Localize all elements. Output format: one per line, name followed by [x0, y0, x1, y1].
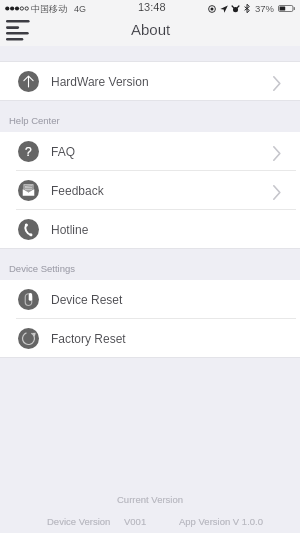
staticText: Hotline [51, 223, 89, 236]
staticText: Factory Reset [51, 332, 126, 345]
staticText: Current Version [117, 494, 184, 505]
staticText: V001 [124, 516, 147, 527]
staticText: Feedback [51, 184, 104, 197]
staticText: ? [25, 145, 32, 158]
staticText: HardWare Version [51, 75, 149, 88]
button[interactable]: Feedback [0, 171, 300, 209]
staticText: Device Reset [51, 293, 123, 306]
button[interactable]: Factory Reset [0, 319, 300, 357]
staticText: 中国移动 [31, 3, 67, 14]
button[interactable]: HardWare Version [0, 62, 300, 100]
staticText: 37% [255, 3, 275, 14]
staticText: App Version V 1.0.0 [179, 516, 263, 527]
staticText: 4G [74, 4, 87, 14]
button[interactable]: Device Reset [0, 280, 300, 318]
staticText: FAQ [51, 145, 76, 158]
staticText: Device Version [47, 516, 111, 527]
staticText: Help Center [9, 115, 60, 126]
staticText: Device Settings [9, 263, 76, 274]
button[interactable]: ? [0, 132, 300, 170]
staticText: About [131, 21, 171, 38]
staticText: 13:48 [138, 1, 166, 13]
button[interactable]: Menu [0, 16, 36, 46]
button[interactable]: Hotline [0, 210, 300, 248]
